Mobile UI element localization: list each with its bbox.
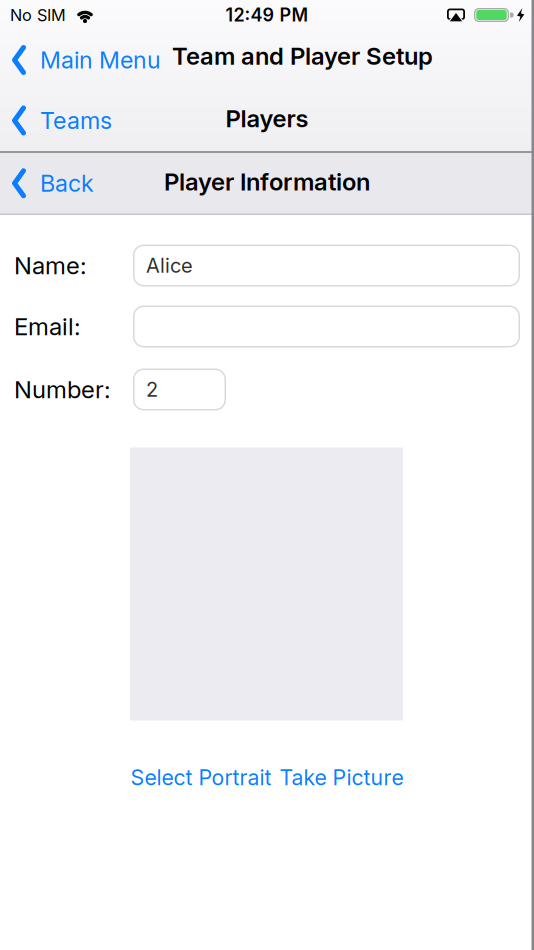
button[interactable]: Back <box>12 168 94 198</box>
button[interactable]: Main Menu <box>12 45 161 75</box>
button[interactable]: Teams <box>12 105 112 135</box>
staticText: Take Picture <box>279 764 403 790</box>
staticText: Email: <box>14 312 81 341</box>
staticText: Players <box>225 104 308 133</box>
staticText: 2 <box>146 377 158 402</box>
staticText: Team and Player Setup <box>172 41 433 70</box>
button[interactable]: Select Portrait <box>130 764 271 790</box>
staticText: No SIM <box>10 5 66 25</box>
staticText: Number: <box>14 375 111 404</box>
staticText: Alice <box>146 253 193 278</box>
staticText: Back <box>40 169 94 197</box>
staticText: Main Menu <box>40 46 161 74</box>
button[interactable]: Take Picture <box>279 764 403 790</box>
staticText: Player Information <box>164 167 370 196</box>
textField[interactable]: Alice <box>146 253 520 278</box>
staticText: 12:49 PM <box>225 4 308 26</box>
staticText: Select Portrait <box>130 764 271 790</box>
textField[interactable]: 2 <box>146 377 226 402</box>
staticText: Name: <box>14 251 87 280</box>
staticText: Teams <box>40 106 112 135</box>
